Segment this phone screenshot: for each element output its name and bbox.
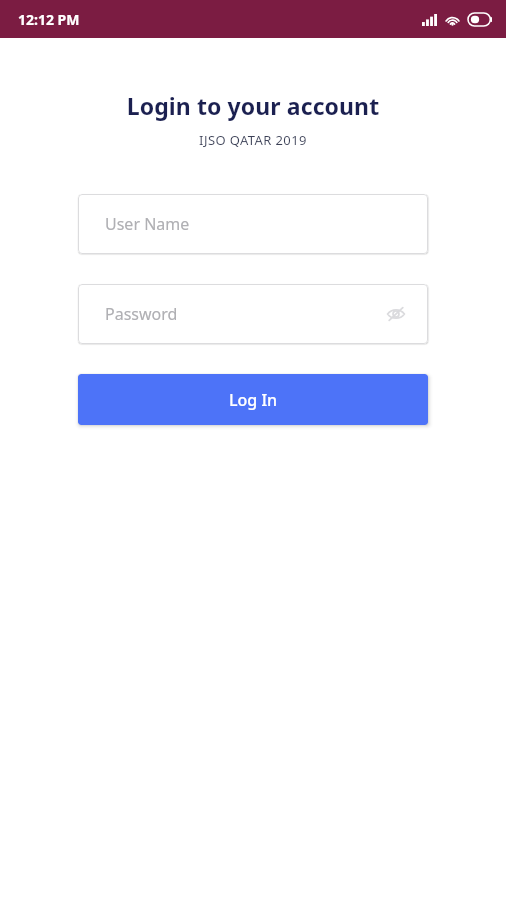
button[interactable]: User Name: [78, 194, 428, 254]
staticText: Log In: [229, 389, 278, 411]
staticText: IJSO QATAR 2019: [0, 131, 506, 149]
button[interactable]: Password: [78, 284, 428, 344]
staticText: Password: [105, 303, 178, 325]
staticText: 12:12 PM: [18, 10, 80, 29]
staticText: User Name: [105, 213, 190, 235]
button[interactable]: Show password: [382, 300, 410, 328]
button[interactable]: Log In: [78, 374, 428, 425]
staticText: Login to your account: [0, 90, 506, 121]
